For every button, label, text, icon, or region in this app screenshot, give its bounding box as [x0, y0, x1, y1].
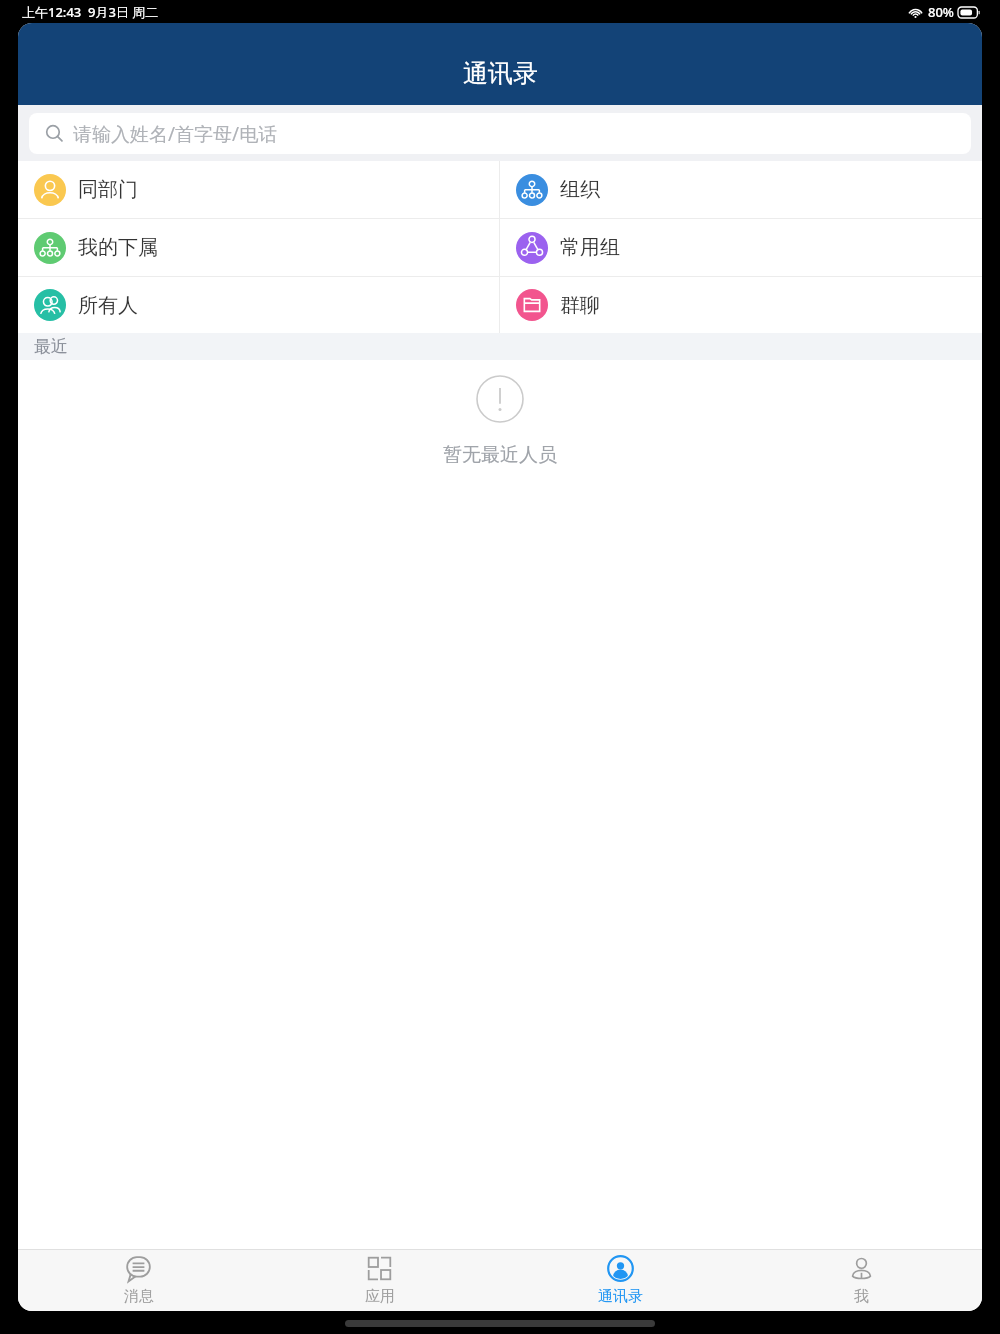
button[interactable]: 常用组	[500, 219, 982, 276]
staticText: 我	[854, 1287, 869, 1306]
staticText: 上午12:43 9月3日 周二	[22, 3, 159, 21]
staticText: 请输入姓名/首字母/电话	[73, 121, 278, 147]
staticText: 暂无最近人员	[443, 443, 557, 467]
button[interactable]: 群聊	[500, 277, 982, 333]
staticText: 通讯录	[598, 1287, 643, 1306]
staticText: 群聊	[560, 293, 600, 318]
staticText: 通讯录	[463, 58, 538, 89]
staticText: 80%	[928, 3, 954, 21]
button[interactable]: 请输入姓名/首字母/电话	[29, 113, 971, 154]
staticText: 应用	[365, 1287, 395, 1306]
button[interactable]: 我	[741, 1250, 982, 1311]
staticText: 组织	[560, 177, 600, 202]
button[interactable]: 应用	[259, 1250, 500, 1311]
button[interactable]: 同部门	[18, 161, 499, 218]
button[interactable]: 我的下属	[18, 219, 499, 276]
button[interactable]: 通讯录	[500, 1250, 741, 1311]
button[interactable]: 组织	[500, 161, 982, 218]
button[interactable]: 消息	[18, 1250, 259, 1311]
staticText: 消息	[124, 1287, 154, 1306]
staticText: 同部门	[78, 177, 138, 202]
staticText: 最近	[34, 336, 68, 357]
staticText: 所有人	[78, 293, 138, 318]
staticText: 常用组	[560, 235, 620, 260]
staticText: 我的下属	[78, 235, 158, 260]
button[interactable]: 所有人	[18, 277, 499, 333]
